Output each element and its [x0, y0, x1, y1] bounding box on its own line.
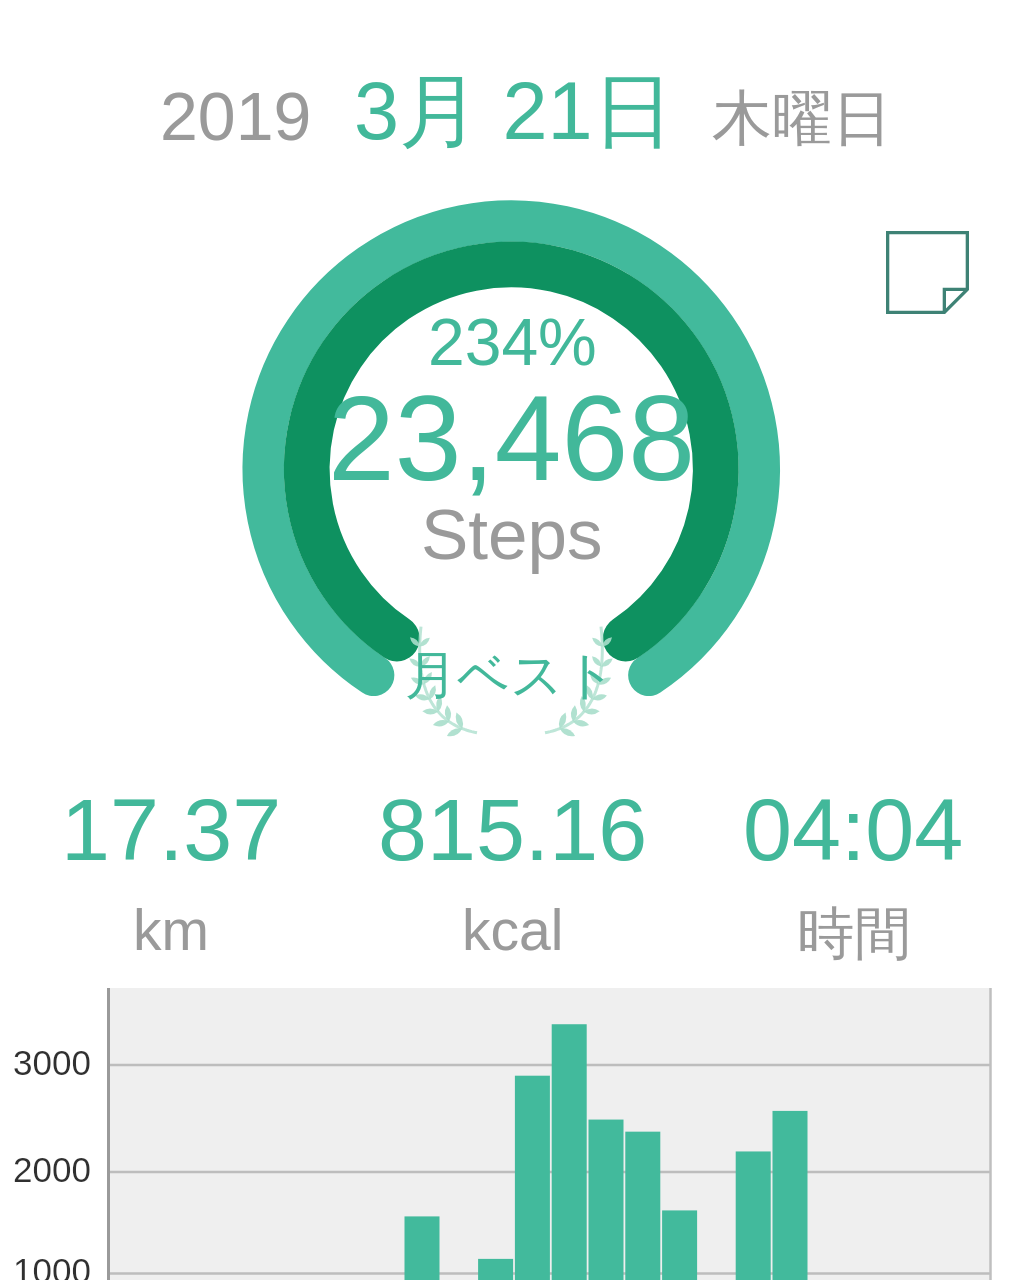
button[interactable]: Step progress ring: [211, 169, 811, 769]
staticText: 1000: [13, 1251, 91, 1280]
staticText: 月ベスト: [405, 643, 617, 709]
staticText: 2000: [13, 1150, 91, 1189]
staticText: 2019: [160, 78, 312, 154]
button[interactable]: 815.16: [342, 780, 683, 962]
staticText: 234%: [428, 305, 597, 379]
button[interactable]: Memo: [886, 231, 969, 314]
staticText: 時間: [797, 898, 911, 970]
staticText: 木曜日: [712, 81, 892, 157]
staticText: 3000: [13, 1043, 91, 1082]
staticText: 23,468: [328, 371, 696, 505]
staticText: 04:04: [743, 780, 964, 878]
staticText: kcal: [462, 898, 564, 962]
staticText: 815.16: [378, 780, 648, 878]
button[interactable]: 月ベスト: [390, 616, 632, 734]
staticText: 3月 21日: [354, 61, 674, 163]
button[interactable]: 04:04: [683, 780, 1024, 970]
staticText: 17.37: [61, 780, 282, 878]
staticText: km: [133, 898, 209, 962]
staticText: Steps: [421, 495, 603, 574]
button[interactable]: 2019: [150, 30, 890, 170]
button[interactable]: 17.37: [0, 780, 342, 962]
